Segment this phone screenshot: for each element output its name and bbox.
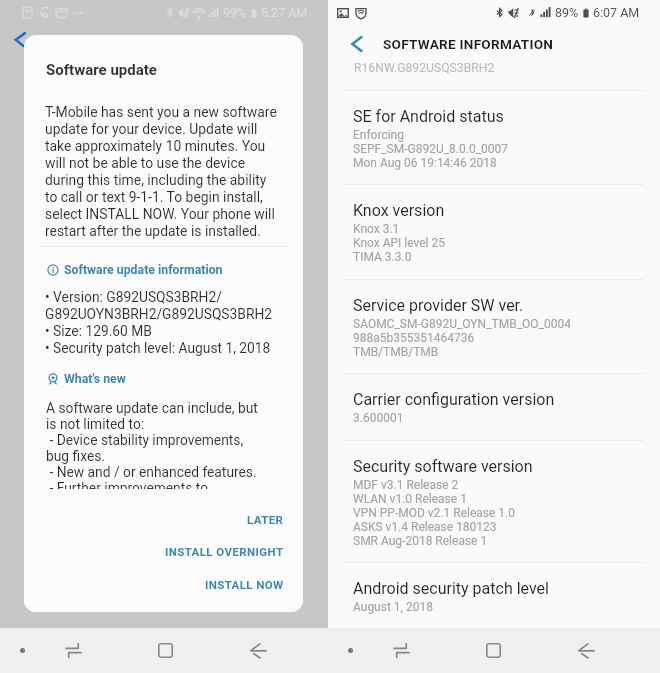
staticText: August 1, 2018 [353,600,433,614]
button[interactable]: Service provider SW ver. [328,279,660,358]
button[interactable]: Carrier configuration version [328,373,660,425]
button[interactable]: Home [475,628,511,673]
button[interactable]: Home [147,628,183,673]
button[interactable]: Back [240,628,276,673]
button[interactable]: Navigate up [342,29,372,59]
button[interactable]: SE for Android status [328,90,660,169]
staticText: R16NW.G892USQS3BRH2 [354,62,495,75]
staticText: • Version: G892USQS3BRH2/ G892UOYN3BRH2/… [45,289,273,356]
staticText: Software update [46,61,157,79]
button[interactable]: Knox version [328,184,660,263]
button[interactable]: Security software version [328,440,660,547]
staticText: MDF v3.1 Release 2 WLAN v1.0 Release 1 V… [353,478,515,548]
staticText: Knox 3.1 Knox API level 25 TIMA 3.3.0 [353,222,445,264]
button[interactable]: Recent apps [55,628,91,673]
staticText: Security software version [353,457,533,476]
staticText: T-Mobile has sent you a new software upd… [45,104,277,239]
staticText: 99% [223,5,247,20]
staticText: Carrier configuration version [353,390,555,409]
button[interactable]: Android security patch level [328,562,660,614]
staticText: SE for Android status [353,107,504,126]
button[interactable]: Back [568,628,604,673]
staticText: What's new [64,372,126,386]
button[interactable]: INSTALL NOW [199,573,290,596]
button[interactable]: Menu [335,628,365,673]
staticText: A software update can include, but is no… [46,400,258,489]
staticText: SAOMC_SM-G892U_OYN_TMB_OO_0004 988a5b355… [353,317,571,359]
staticText: INSTALL OVERNIGHT [165,545,284,558]
staticText: 6:07 AM [593,5,640,20]
button[interactable]: INSTALL OVERNIGHT [159,540,290,563]
staticText: Software update information [64,263,223,277]
staticText: LATER [247,513,284,526]
staticText: 89% [555,5,579,20]
staticText: Knox version [353,201,445,220]
staticText: Android security patch level [353,579,549,598]
button[interactable]: Recent apps [383,628,419,673]
staticText: Service provider SW ver. [353,296,524,315]
button[interactable]: Menu [7,628,37,673]
staticText: INSTALL NOW [205,578,284,591]
staticText: 3.600001 [353,411,404,425]
button[interactable]: LATER [241,508,290,531]
staticText: 5:27 AM [261,5,308,20]
staticText: Enforcing SEPF_SM-G892U_8.0.0_0007 Mon A… [353,128,509,170]
staticText: SOFTWARE INFORMATION [383,36,554,52]
